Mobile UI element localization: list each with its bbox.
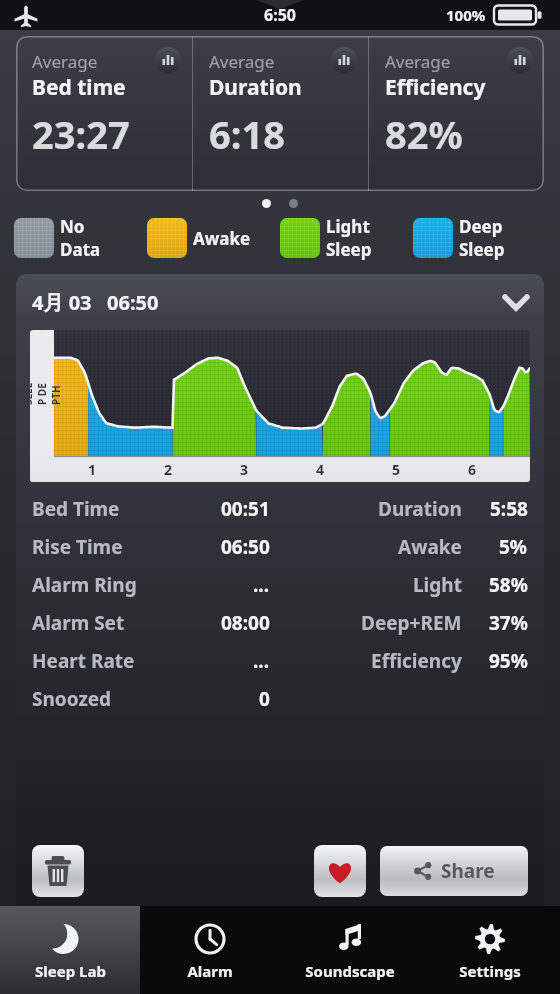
staticText: 95%	[489, 648, 528, 674]
button[interactable]: Settings	[420, 906, 560, 994]
button[interactable]: Light	[280, 212, 413, 264]
button[interactable]: Soundscape	[280, 906, 420, 994]
button[interactable]: Alarm	[140, 906, 280, 994]
staticText: 2	[164, 460, 173, 479]
button[interactable]: Delete	[32, 845, 84, 897]
staticText: Sleep Lab	[35, 961, 106, 981]
button[interactable]: Statistics	[155, 47, 181, 73]
staticText: 100%	[446, 5, 486, 25]
staticText: Efficiency	[385, 73, 486, 102]
staticText: 58%	[489, 572, 528, 598]
staticText: 1	[88, 460, 97, 479]
button[interactable]: Expand	[496, 282, 536, 322]
staticText: Alarm Ring	[32, 572, 137, 598]
staticText: Rise Time	[32, 534, 123, 560]
staticText: Bed time	[32, 73, 126, 102]
button[interactable]: Deep	[413, 212, 546, 264]
staticText: 06:50	[221, 534, 270, 560]
staticText: Light	[413, 572, 462, 598]
staticText: 5:58	[490, 496, 528, 522]
button[interactable]: Statistics	[331, 47, 357, 73]
staticText: ...	[253, 572, 270, 598]
staticText: 08:00	[221, 610, 270, 636]
button[interactable]: Average	[193, 36, 368, 191]
staticText: Data	[60, 238, 101, 261]
staticText: 23:27	[32, 108, 130, 160]
staticText: Snoozed	[32, 686, 112, 712]
staticText: Duration	[209, 73, 302, 102]
staticText: Alarm	[187, 961, 233, 981]
staticText: No	[60, 215, 85, 238]
staticText: 37%	[489, 610, 528, 636]
staticText: 82%	[385, 108, 463, 160]
staticText: ...	[253, 648, 270, 674]
staticText: 6:50	[264, 4, 296, 26]
button[interactable]: Awake	[147, 212, 280, 264]
staticText: 00:51	[221, 496, 270, 522]
button[interactable]: 4月 03 06:50	[16, 274, 544, 330]
staticText: 5	[392, 460, 401, 479]
staticText: Duration	[378, 496, 462, 522]
button[interactable]: No	[14, 212, 147, 264]
staticText: 4月 03 06:50	[32, 289, 159, 316]
staticText: Soundscape	[305, 961, 395, 981]
staticText: 0	[259, 686, 270, 712]
staticText: Deep+REM	[361, 610, 462, 636]
staticText: Average	[385, 50, 451, 73]
staticText: Sleep	[459, 238, 505, 261]
staticText: Alarm Set	[32, 610, 125, 636]
staticText: Average	[32, 50, 98, 73]
staticText: Bed Time	[32, 496, 120, 522]
button[interactable]: Average	[369, 36, 544, 191]
staticText: SLEEP DEPTH	[30, 381, 63, 405]
staticText: Deep	[459, 215, 503, 238]
staticText: Awake	[193, 227, 251, 250]
staticText: Settings	[459, 961, 521, 981]
button[interactable]: Statistics	[507, 47, 533, 73]
staticText: 5%	[499, 534, 528, 560]
staticText: 6:18	[209, 108, 285, 160]
button[interactable]: Sleep Lab	[0, 906, 140, 994]
staticText: Sleep	[326, 238, 372, 261]
staticText: Average	[209, 50, 275, 73]
staticText: Awake	[398, 534, 462, 560]
staticText: 4	[316, 460, 325, 479]
staticText: Share	[441, 858, 495, 884]
staticText: Efficiency	[371, 648, 462, 674]
button[interactable]: Share	[380, 846, 528, 896]
staticText: Heart Rate	[32, 648, 135, 674]
staticText: 6	[468, 460, 477, 479]
staticText: 3	[240, 460, 249, 479]
button[interactable]: Average	[16, 36, 192, 191]
staticText: Light	[326, 215, 370, 238]
button[interactable]: Favorite	[314, 845, 366, 897]
